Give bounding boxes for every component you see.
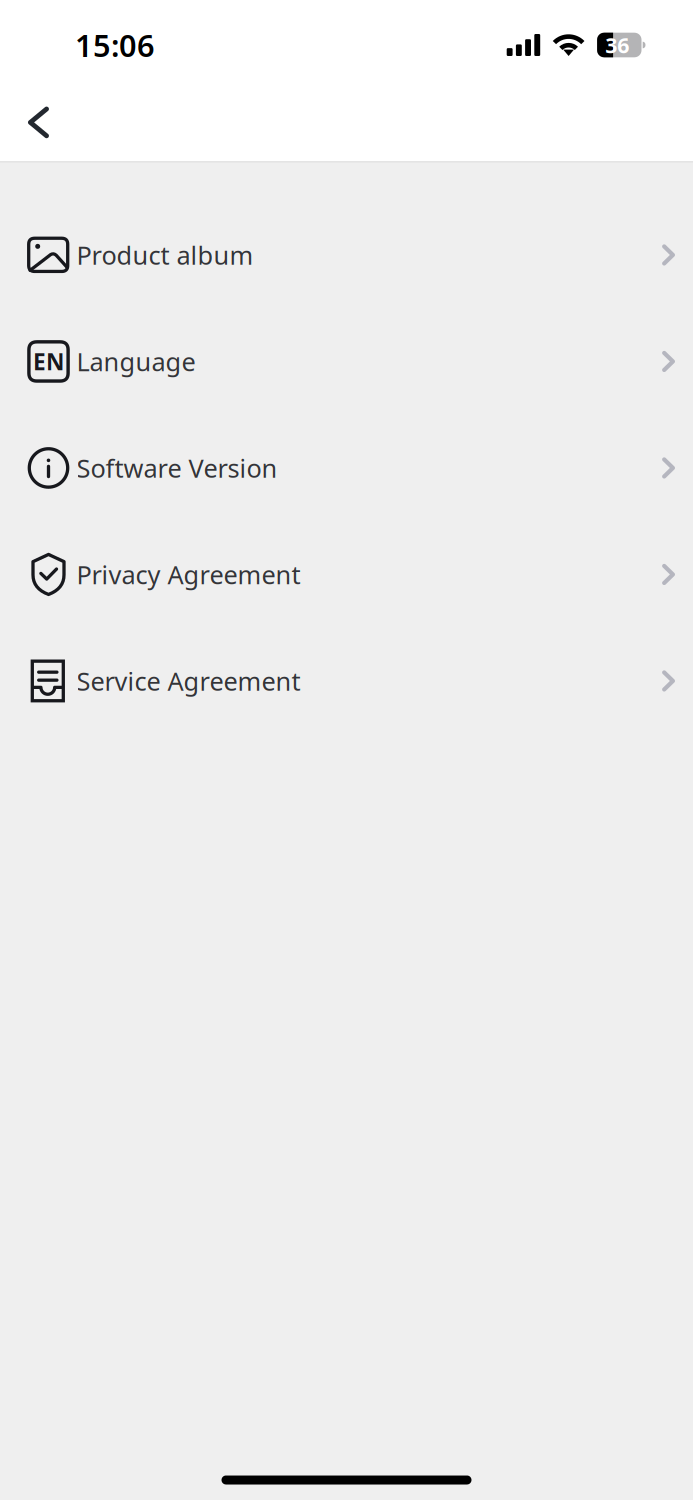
staticText: EN [33, 346, 64, 376]
staticText: Software Version [76, 451, 277, 485]
button[interactable]: Service Agreement [0, 628, 693, 734]
button[interactable]: Privacy Agreement [0, 521, 693, 628]
button[interactable]: Back [0, 90, 77, 163]
staticText: Service Agreement [76, 664, 300, 698]
staticText: 15:06 [75, 25, 155, 65]
staticText: Language [76, 345, 195, 378]
staticText: Privacy Agreement [76, 558, 300, 591]
button[interactable]: Software Version [0, 415, 693, 521]
button[interactable]: Product album [0, 202, 693, 308]
staticText: 36 [605, 31, 629, 59]
button[interactable]: EN [0, 308, 693, 415]
staticText: Product album [76, 238, 253, 272]
